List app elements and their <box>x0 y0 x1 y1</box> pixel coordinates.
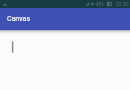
button[interactable]: Canvas <box>0 8 130 30</box>
staticText: 48% <box>96 2 105 7</box>
staticText: 02:30 <box>116 1 129 7</box>
button[interactable]: Drawing canvas <box>0 35 130 90</box>
staticText: Canvas <box>7 15 30 23</box>
